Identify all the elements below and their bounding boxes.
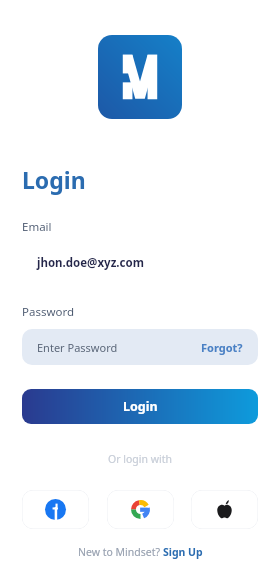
staticText: Login — [123, 398, 158, 415]
button[interactable]: jhon.doe@xyz.com — [22, 244, 258, 282]
button[interactable]: Sign Up — [163, 545, 203, 559]
staticText: Sign Up — [163, 545, 203, 559]
staticText: Forgot? — [201, 340, 243, 355]
staticText: Login — [22, 164, 86, 195]
button[interactable]: Sign in with Google — [107, 490, 174, 529]
button[interactable]: Login — [22, 389, 258, 424]
staticText: New to Mindset? — [78, 545, 163, 559]
staticText: jhon.doe@xyz.com — [37, 255, 144, 271]
staticText: Or login with — [108, 452, 172, 466]
button[interactable]: Sign in with Facebook — [22, 490, 89, 529]
staticText: Email — [22, 219, 52, 235]
button[interactable]: Enter Password — [22, 329, 258, 365]
staticText: Enter Password — [37, 340, 118, 355]
button[interactable]: Sign in with Apple — [191, 490, 258, 529]
staticText: Password — [22, 304, 75, 320]
